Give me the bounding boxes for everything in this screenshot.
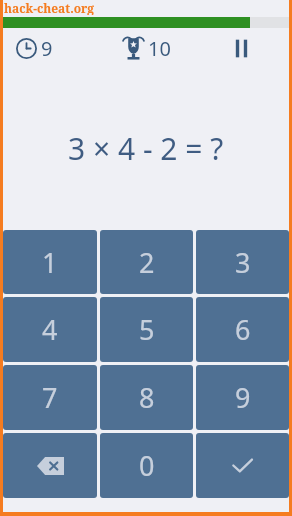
button[interactable]: 5 xyxy=(100,297,193,362)
staticText: 10 xyxy=(148,35,171,62)
staticText: 3 × 4 - 2 = ? xyxy=(68,128,224,169)
button[interactable]: 3 xyxy=(196,230,289,294)
staticText: 9 xyxy=(41,35,53,62)
button[interactable]: 6 xyxy=(196,297,289,362)
staticText: 1 xyxy=(42,244,58,281)
button[interactable]: Submit xyxy=(196,433,289,498)
staticText: 2 xyxy=(139,244,155,281)
staticText: 4 xyxy=(42,311,58,348)
button[interactable]: 9 xyxy=(3,29,99,67)
button[interactable]: 0 xyxy=(100,433,193,498)
button[interactable]: 1 xyxy=(3,230,97,294)
button[interactable]: 8 xyxy=(100,365,193,430)
button[interactable]: Pause xyxy=(194,29,289,67)
staticText: 7 xyxy=(42,379,58,416)
staticText: 0 xyxy=(139,447,155,484)
button[interactable]: 10 xyxy=(99,29,194,67)
button[interactable]: 2 xyxy=(100,230,193,294)
button[interactable]: 7 xyxy=(3,365,97,430)
button[interactable]: 9 xyxy=(196,365,289,430)
button[interactable]: 4 xyxy=(3,297,97,362)
staticText: 8 xyxy=(139,379,155,416)
button[interactable]: Backspace xyxy=(3,433,97,498)
staticText: 6 xyxy=(235,311,251,348)
staticText: 9 xyxy=(235,379,251,416)
staticText: hack-cheat.org xyxy=(4,0,95,15)
staticText: 3 xyxy=(235,244,251,281)
staticText: 5 xyxy=(139,311,155,348)
